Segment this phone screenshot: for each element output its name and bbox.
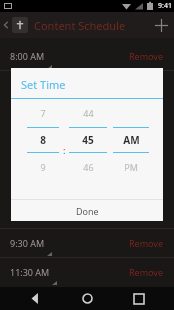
staticText: Done [76,205,99,217]
staticText: Remove [129,266,164,278]
button[interactable]: 8:00 AM [0,42,174,70]
button[interactable]: AM [113,128,149,152]
staticText: AM [123,133,140,147]
button[interactable]: 45 [69,128,107,152]
button[interactable]: 7 [27,99,59,127]
staticText: 9:30 AM [10,237,45,249]
button[interactable]: Recents [122,287,156,310]
staticText: : [63,144,66,156]
staticText: Remove [129,237,164,249]
button[interactable]: 46 [69,153,107,181]
staticText: Set Time [21,77,66,92]
button[interactable]: Done [11,200,163,221]
staticText: 46 [83,161,94,173]
staticText: 8 [40,133,46,147]
button[interactable]: Home [70,287,104,310]
button[interactable]: 44 [69,99,107,127]
staticText: 11:30 AM [10,266,50,278]
staticText: Content Schedule [34,18,126,33]
staticText: 9:41 [158,1,172,11]
button[interactable]: Back [18,287,52,310]
button[interactable]: 9:30 AM [0,229,174,257]
staticText: Remove [129,50,164,62]
button[interactable]: 11:30 AM [0,258,174,286]
staticText: 45 [82,133,94,147]
staticText: 44 [83,107,94,119]
staticText: 9 [40,161,46,173]
staticText: 8:00 AM [10,50,45,62]
button[interactable]: Back [0,12,12,38]
staticText: 7 [40,107,46,119]
button[interactable]: PM [113,153,149,181]
button[interactable]: 8 [27,128,59,152]
staticText: PM [124,161,138,173]
button[interactable]: 9 [27,153,59,181]
button[interactable]: Add [148,12,174,38]
